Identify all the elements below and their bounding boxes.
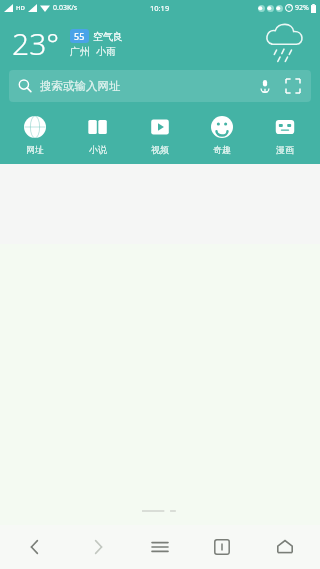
staticText: 网址 bbox=[26, 144, 44, 155]
staticText: 广州 bbox=[70, 45, 90, 58]
staticText: 空气良 bbox=[93, 30, 123, 43]
button[interactable]: Scan QR code bbox=[284, 77, 302, 95]
staticText: 视频 bbox=[151, 144, 169, 155]
button[interactable]: 网址 bbox=[8, 114, 62, 157]
staticText: 小说 bbox=[89, 144, 107, 155]
button[interactable]: 搜索或输入网址 bbox=[9, 70, 311, 102]
staticText: 漫画 bbox=[276, 144, 294, 155]
staticText: HD bbox=[16, 4, 25, 12]
button[interactable]: 漫画 bbox=[258, 114, 312, 157]
button[interactable]: Back bbox=[8, 525, 62, 569]
button[interactable]: Weather bbox=[262, 21, 306, 65]
staticText: 92% bbox=[295, 3, 309, 13]
button[interactable]: 小说 bbox=[71, 114, 125, 157]
staticText: 搜索或输入网址 bbox=[40, 79, 121, 93]
button[interactable]: 奇趣 bbox=[195, 114, 249, 157]
staticText: 55 bbox=[74, 30, 85, 42]
staticText: 0.03K/s bbox=[53, 3, 78, 13]
button[interactable]: Home bbox=[258, 525, 312, 569]
button[interactable]: 视频 bbox=[133, 114, 187, 157]
staticText: 奇趣 bbox=[213, 144, 231, 155]
staticText: 小雨 bbox=[96, 45, 116, 58]
staticText: 23° bbox=[12, 23, 60, 64]
button[interactable]: Menu bbox=[133, 525, 187, 569]
button[interactable]: Forward bbox=[71, 525, 125, 569]
staticText: 10:19 bbox=[150, 3, 170, 13]
button[interactable]: Voice search bbox=[256, 77, 274, 95]
button[interactable]: Tabs bbox=[195, 525, 249, 569]
